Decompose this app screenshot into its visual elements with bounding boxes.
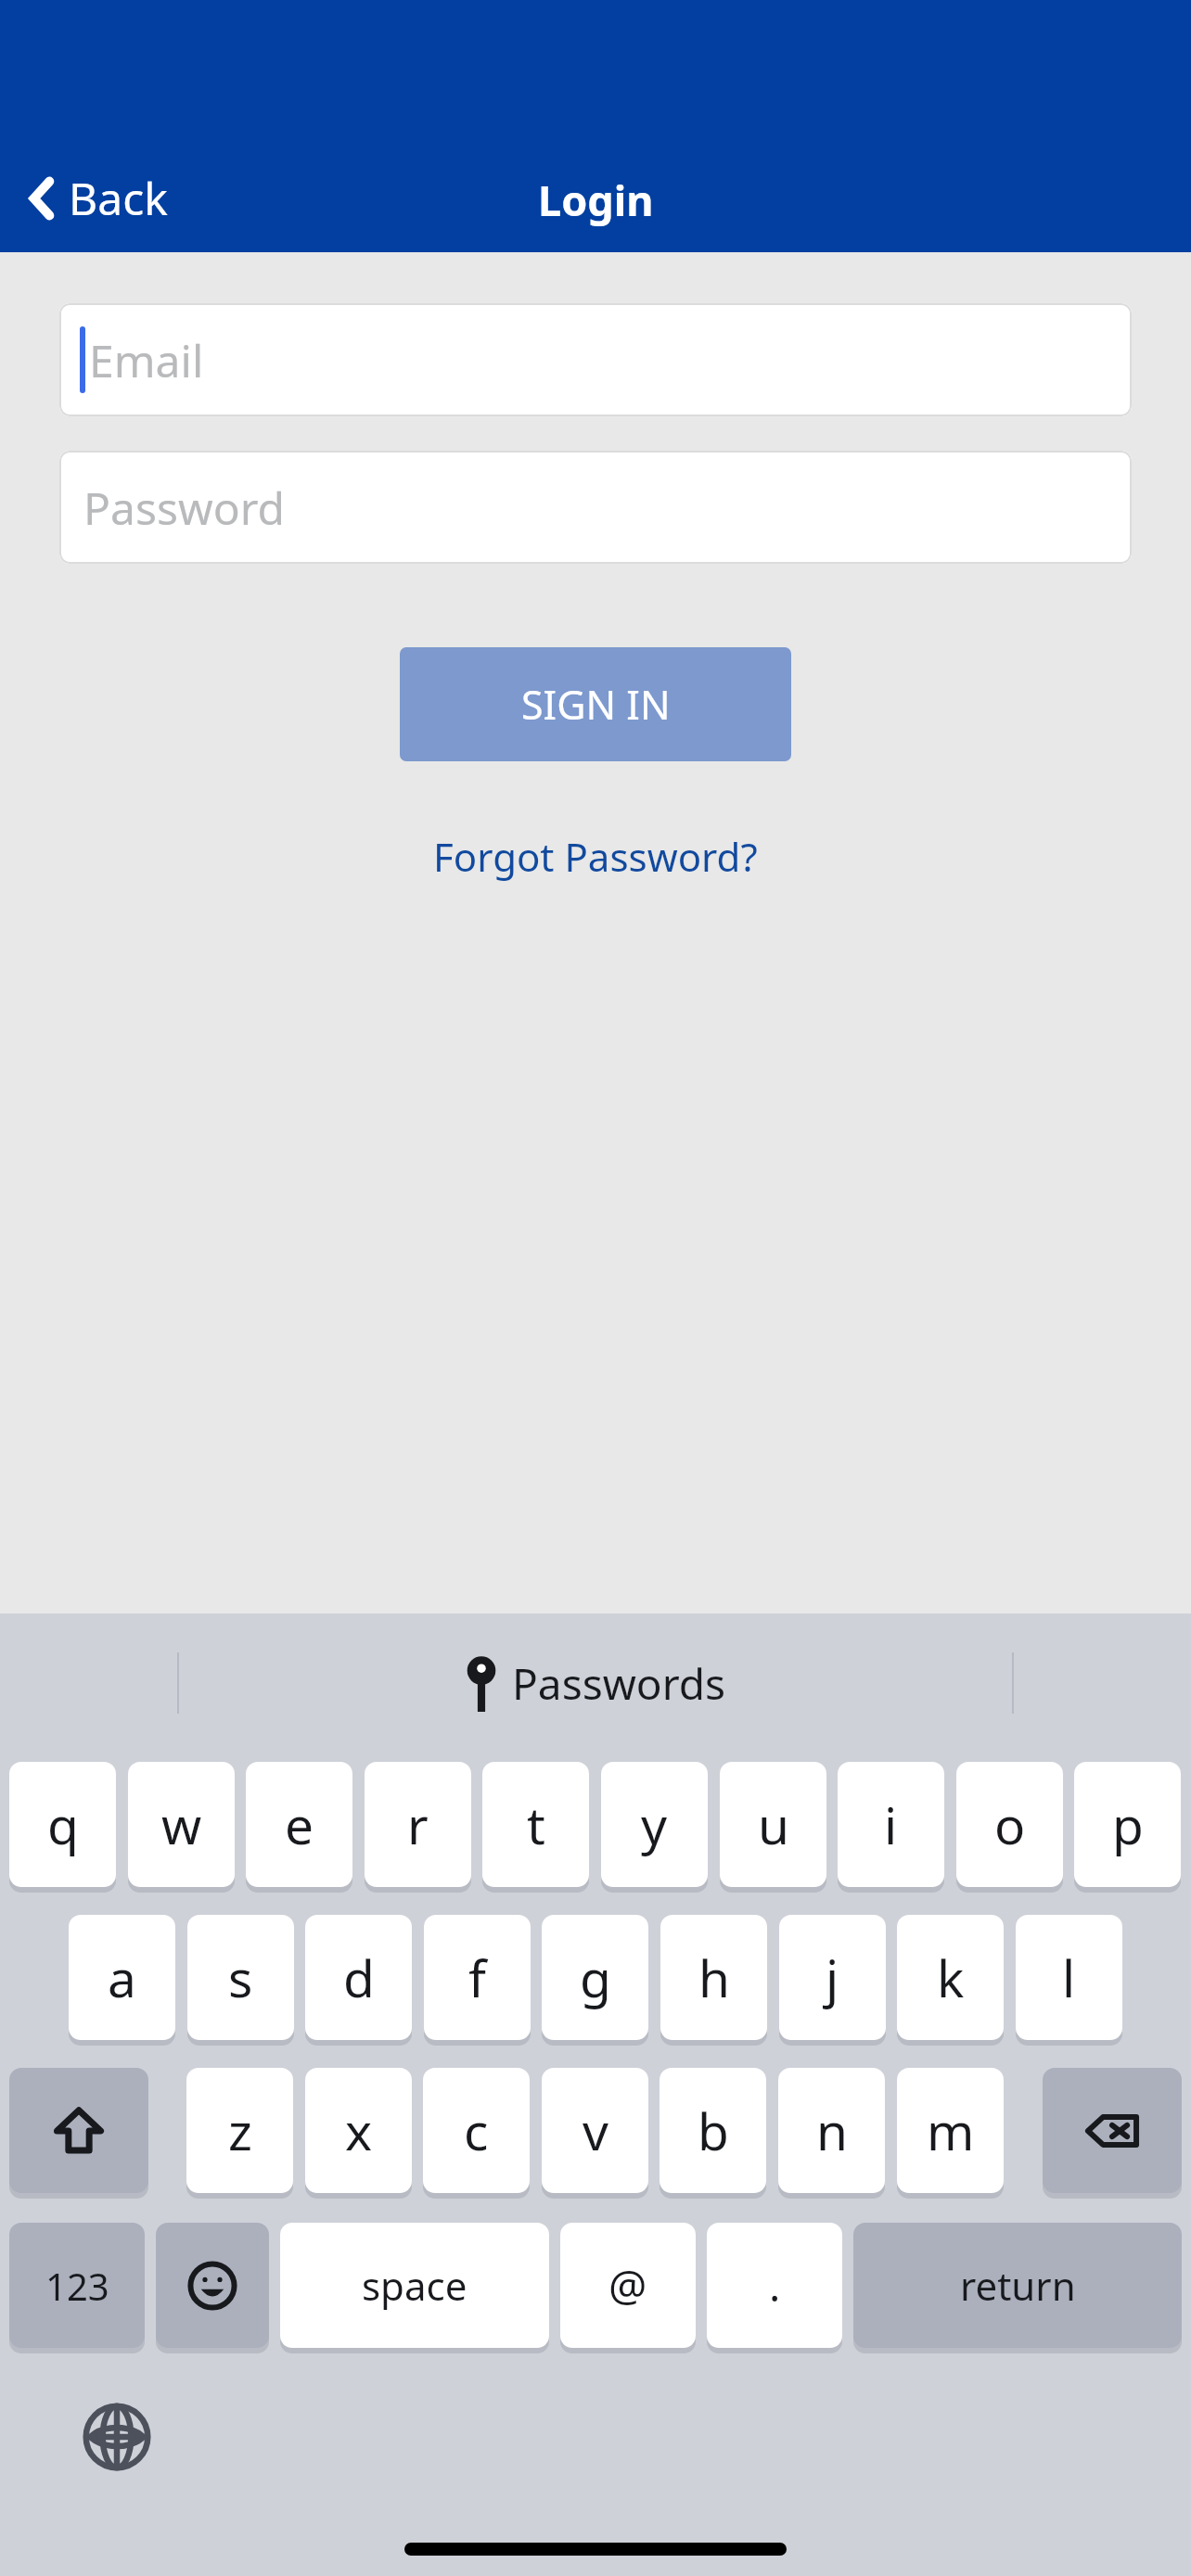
staticText: r bbox=[407, 1790, 429, 1859]
staticText: Forgot Password? bbox=[433, 830, 758, 883]
button[interactable]: i bbox=[838, 1762, 944, 1887]
button[interactable]: y bbox=[601, 1762, 708, 1887]
button[interactable]: f bbox=[424, 1915, 531, 2040]
staticText: o bbox=[994, 1790, 1026, 1859]
staticText: d bbox=[343, 1943, 375, 2012]
button[interactable]: l bbox=[1016, 1915, 1122, 2040]
button[interactable]: k bbox=[897, 1915, 1004, 2040]
staticText: u bbox=[758, 1790, 789, 1859]
staticText: l bbox=[1062, 1943, 1076, 2012]
staticText: Login bbox=[538, 172, 654, 228]
staticText: Back bbox=[69, 168, 168, 228]
button[interactable]: Passwords bbox=[456, 1645, 736, 1722]
button[interactable]: c bbox=[423, 2068, 530, 2193]
button[interactable]: w bbox=[128, 1762, 235, 1887]
staticText: @ bbox=[608, 2256, 647, 2315]
staticText: s bbox=[228, 1943, 253, 2012]
staticText: m bbox=[927, 2096, 975, 2165]
button[interactable]: d bbox=[305, 1915, 412, 2040]
button[interactable]: a bbox=[69, 1915, 175, 2040]
button[interactable]: Forgot Password? bbox=[411, 819, 780, 894]
staticText: z bbox=[228, 2096, 252, 2165]
staticText: g bbox=[580, 1943, 611, 2012]
button[interactable]: m bbox=[897, 2068, 1004, 2193]
staticText: n bbox=[816, 2096, 848, 2165]
button[interactable]: Shift bbox=[9, 2068, 148, 2193]
staticText: f bbox=[468, 1943, 486, 2012]
button[interactable]: z bbox=[186, 2068, 293, 2193]
button[interactable]: Password bbox=[59, 451, 1132, 564]
button[interactable]: b bbox=[660, 2068, 766, 2193]
button[interactable]: Emoji bbox=[156, 2223, 269, 2348]
button[interactable]: Delete bbox=[1043, 2068, 1182, 2193]
button[interactable]: h bbox=[660, 1915, 767, 2040]
button[interactable]: p bbox=[1074, 1762, 1181, 1887]
staticText: c bbox=[464, 2096, 489, 2165]
button[interactable]: @ bbox=[560, 2223, 696, 2348]
button[interactable]: Back bbox=[20, 155, 177, 241]
staticText: return bbox=[960, 2259, 1076, 2312]
button[interactable]: x bbox=[305, 2068, 412, 2193]
staticText: k bbox=[937, 1943, 965, 2012]
button[interactable]: v bbox=[542, 2068, 648, 2193]
staticText: x bbox=[345, 2096, 373, 2165]
staticText: e bbox=[285, 1790, 314, 1859]
button[interactable]: g bbox=[542, 1915, 648, 2040]
staticText: i bbox=[884, 1790, 898, 1859]
staticText: v bbox=[583, 2096, 608, 2165]
button[interactable]: n bbox=[778, 2068, 885, 2193]
button[interactable]: Change keyboard bbox=[72, 2392, 161, 2481]
staticText: j bbox=[826, 1943, 839, 2012]
button[interactable]: r bbox=[365, 1762, 471, 1887]
button[interactable]: j bbox=[779, 1915, 886, 2040]
button[interactable]: . bbox=[707, 2223, 842, 2348]
button[interactable]: Email bbox=[59, 303, 1132, 416]
button[interactable]: e bbox=[246, 1762, 352, 1887]
button[interactable]: o bbox=[956, 1762, 1063, 1887]
button[interactable]: t bbox=[482, 1762, 589, 1887]
staticText: space bbox=[362, 2259, 467, 2312]
staticText: 123 bbox=[45, 2261, 109, 2311]
staticText: h bbox=[698, 1943, 730, 2012]
button[interactable]: q bbox=[9, 1762, 116, 1887]
staticText: Passwords bbox=[512, 1654, 726, 1713]
staticText: y bbox=[641, 1790, 668, 1859]
staticText: Email bbox=[89, 330, 204, 390]
staticText: SIGN IN bbox=[521, 677, 671, 732]
staticText: Password bbox=[83, 478, 286, 538]
button[interactable]: s bbox=[187, 1915, 294, 2040]
staticText: p bbox=[1112, 1790, 1144, 1859]
staticText: . bbox=[769, 2256, 781, 2315]
staticText: w bbox=[161, 1790, 202, 1859]
button[interactable]: SIGN IN bbox=[400, 647, 791, 761]
staticText: q bbox=[47, 1790, 79, 1859]
button[interactable]: return bbox=[853, 2223, 1182, 2348]
staticText: b bbox=[698, 2096, 729, 2165]
button[interactable]: space bbox=[280, 2223, 549, 2348]
staticText: a bbox=[108, 1943, 136, 2012]
staticText: t bbox=[527, 1790, 545, 1859]
button[interactable]: u bbox=[720, 1762, 826, 1887]
button[interactable]: 123 bbox=[9, 2223, 145, 2348]
